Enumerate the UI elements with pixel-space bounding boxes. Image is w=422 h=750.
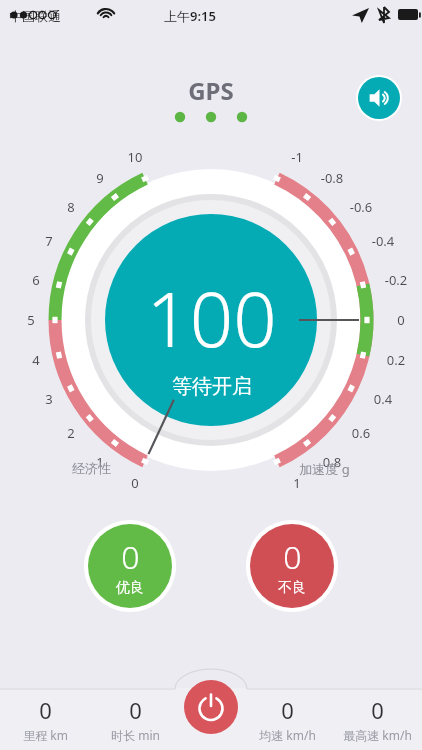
staticText: 均速 km/h	[259, 727, 316, 743]
staticText: 0.6	[344, 424, 378, 442]
staticText: 0	[129, 695, 142, 725]
staticText: 不良	[278, 579, 306, 597]
staticText: 0	[371, 695, 384, 725]
staticText: 8	[61, 198, 81, 216]
staticText: 0.8	[315, 453, 349, 471]
button[interactable]: Power	[184, 680, 238, 734]
staticText: 等待开启	[172, 374, 252, 399]
button[interactable]: Sound	[358, 77, 400, 119]
staticText: 0.4	[366, 390, 400, 408]
staticText: 1	[280, 474, 314, 492]
staticText: -0.4	[366, 232, 400, 250]
staticText: GPS	[188, 74, 234, 107]
staticText: 上午9:15	[164, 7, 216, 25]
staticText: 1	[90, 453, 110, 471]
button[interactable]: 0	[88, 524, 172, 608]
staticText: 5	[21, 311, 41, 329]
staticText: 0	[39, 695, 52, 725]
button[interactable]: 0	[332, 691, 422, 747]
staticText: -0.2	[379, 271, 413, 289]
staticText: 9	[90, 169, 110, 187]
staticText: 4	[26, 351, 46, 369]
staticText: 6	[26, 271, 46, 289]
staticText: 10	[125, 148, 145, 166]
button[interactable]: 0	[242, 691, 332, 747]
staticText: -0.6	[344, 198, 378, 216]
staticText: 2	[61, 424, 81, 442]
button[interactable]: 0	[90, 691, 180, 747]
button[interactable]: 0	[0, 691, 90, 747]
staticText: 0.2	[379, 351, 413, 369]
staticText: 加速度 g	[299, 460, 350, 478]
staticText: 0	[121, 535, 140, 579]
staticText: 3	[39, 390, 59, 408]
staticText: 优良	[116, 579, 144, 597]
staticText: 0	[384, 311, 418, 329]
staticText: 经济性	[72, 460, 111, 476]
staticText: 里程 km	[23, 727, 68, 743]
staticText: 0	[125, 474, 145, 492]
staticText: 7	[39, 232, 59, 250]
staticText: -0.8	[315, 169, 349, 187]
staticText: 最高速 km/h	[343, 727, 412, 743]
staticText: 0	[283, 535, 302, 579]
staticText: 100	[146, 266, 277, 370]
staticText: 0	[281, 695, 294, 725]
button[interactable]: 0	[250, 524, 334, 608]
staticText: -1	[280, 148, 314, 166]
staticText: 中国联通	[9, 8, 61, 24]
staticText: 时长 min	[111, 727, 160, 743]
